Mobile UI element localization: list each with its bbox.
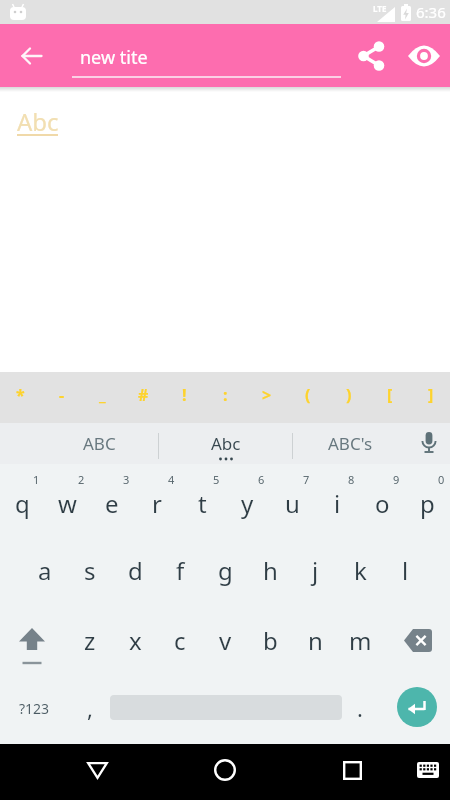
button[interactable]: (	[287, 373, 328, 417]
staticText: )	[346, 384, 352, 406]
staticText: Abc	[17, 105, 59, 138]
staticText: 3	[123, 472, 130, 486]
button[interactable]: h	[248, 537, 292, 603]
staticText: t	[198, 487, 207, 520]
staticText: ABC	[83, 432, 116, 455]
staticText: d	[128, 554, 143, 587]
button[interactable]: c	[158, 607, 202, 673]
button[interactable]: ]	[410, 373, 450, 417]
button[interactable]: d	[113, 537, 157, 603]
button[interactable]	[408, 423, 450, 464]
staticText: -	[59, 384, 65, 406]
button[interactable]: ABC's	[293, 423, 408, 464]
staticText: w	[58, 487, 77, 520]
staticText: !	[182, 384, 187, 406]
staticText: new tite	[80, 45, 148, 70]
button[interactable]	[73, 746, 121, 794]
staticText: 7	[303, 472, 310, 486]
staticText: j	[312, 554, 319, 587]
button[interactable]: #	[123, 373, 164, 417]
button[interactable]: j	[293, 537, 337, 603]
button[interactable]	[400, 32, 448, 80]
staticText: 1	[33, 472, 40, 486]
button[interactable]: i	[315, 470, 359, 536]
staticText: r	[152, 487, 162, 520]
staticText: [	[387, 384, 393, 406]
button[interactable]: n	[293, 607, 337, 673]
button[interactable]: -	[41, 373, 82, 417]
button[interactable]: f	[158, 537, 202, 603]
staticText: u	[285, 487, 300, 520]
button[interactable]: a	[23, 537, 67, 603]
button[interactable]	[201, 746, 249, 794]
button[interactable]	[397, 687, 437, 727]
staticText: 9	[393, 472, 400, 486]
button[interactable]: g	[203, 537, 247, 603]
staticText: 6:36	[416, 2, 446, 22]
button[interactable]: new tite	[72, 24, 341, 87]
button[interactable]: m	[338, 607, 382, 673]
button[interactable]	[392, 610, 444, 670]
button[interactable]	[8, 32, 56, 80]
staticText: a	[38, 554, 52, 587]
button[interactable]: !	[164, 373, 205, 417]
button[interactable]: z	[68, 607, 112, 673]
staticText: .	[357, 693, 363, 723]
button[interactable]: ABC	[40, 423, 158, 464]
button[interactable]	[348, 32, 396, 80]
staticText: y	[241, 487, 254, 520]
staticText: ]	[428, 384, 434, 406]
button[interactable]: k	[338, 537, 382, 603]
button[interactable]	[406, 746, 450, 794]
staticText: b	[263, 624, 278, 657]
staticText: q	[15, 487, 30, 520]
staticText: 2	[78, 472, 85, 486]
button[interactable]: :	[205, 373, 246, 417]
staticText: >	[262, 384, 272, 406]
button[interactable]: u	[270, 470, 314, 536]
staticText: ,	[87, 693, 93, 723]
button[interactable]: s	[68, 537, 112, 603]
staticText: z	[84, 624, 96, 657]
button[interactable]: r	[135, 470, 179, 536]
staticText: ABC's	[328, 432, 373, 455]
staticText: e	[105, 487, 119, 520]
button[interactable]: l	[383, 537, 427, 603]
button[interactable]: [	[369, 373, 410, 417]
button[interactable]: e	[90, 470, 134, 536]
staticText: Abc	[211, 432, 241, 455]
button[interactable]: Abc	[159, 423, 292, 464]
staticText: (	[305, 384, 311, 406]
staticText: f	[176, 554, 185, 587]
staticText: n	[308, 624, 323, 657]
staticText: #	[138, 384, 149, 406]
staticText: *	[16, 384, 25, 406]
button[interactable]	[6, 616, 58, 676]
staticText: _	[99, 384, 106, 406]
staticText: ?123	[19, 699, 50, 718]
button[interactable]: p	[405, 470, 449, 536]
button[interactable]: t	[180, 470, 224, 536]
staticText: 0	[438, 472, 445, 486]
button[interactable]: y	[225, 470, 269, 536]
button[interactable]: _	[82, 373, 123, 417]
staticText: 8	[348, 472, 355, 486]
staticText: m	[349, 624, 372, 657]
button[interactable]: ,	[70, 680, 110, 736]
button[interactable]: o	[360, 470, 404, 536]
button[interactable]: v	[203, 607, 247, 673]
staticText: p	[420, 487, 435, 520]
button[interactable]: >	[246, 373, 287, 417]
button[interactable]	[328, 746, 376, 794]
button[interactable]: .	[340, 680, 380, 736]
button[interactable]: x	[113, 607, 157, 673]
button[interactable]: b	[248, 607, 292, 673]
staticText: 5	[213, 472, 220, 486]
button[interactable]: *	[0, 373, 41, 417]
staticText: x	[129, 624, 142, 657]
button[interactable]: q	[0, 470, 44, 536]
button[interactable]: ?123	[8, 680, 60, 736]
button[interactable]: w	[45, 470, 89, 536]
button[interactable]: )	[328, 373, 369, 417]
